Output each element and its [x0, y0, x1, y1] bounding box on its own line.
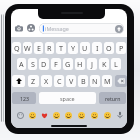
button[interactable]: Send: [115, 25, 123, 33]
button[interactable]: D: [39, 58, 49, 70]
button[interactable]: X: [41, 75, 52, 87]
button[interactable]: N: [90, 75, 100, 87]
staticText: Z: [31, 76, 36, 86]
staticText: 123: [20, 95, 29, 102]
staticText: O: [106, 43, 112, 53]
staticText: F: [54, 59, 58, 69]
button[interactable]: Emoji: [26, 108, 38, 122]
button[interactable]: Y: [68, 42, 78, 54]
other: Shift: [16, 78, 22, 84]
button[interactable]: Emoji: [101, 108, 114, 122]
button[interactable]: H: [75, 58, 85, 70]
staticText: R: [47, 43, 52, 53]
button[interactable]: L: [111, 58, 121, 70]
staticText: iMessage: [45, 25, 69, 32]
button[interactable]: iMessage: [39, 23, 124, 34]
button[interactable]: Camera: [15, 25, 23, 32]
button[interactable]: Emoji: [75, 108, 88, 122]
button[interactable]: Z: [28, 75, 39, 87]
button[interactable]: A: [17, 58, 26, 70]
staticText: S: [31, 59, 35, 69]
other: Backspace: [117, 77, 125, 85]
staticText: N: [92, 76, 98, 86]
staticText: T: [59, 43, 63, 53]
button[interactable]: O: [104, 42, 114, 54]
staticText: V: [69, 76, 74, 86]
button[interactable]: space: [39, 92, 96, 104]
button[interactable]: U: [80, 42, 90, 54]
staticText: Y: [71, 43, 76, 53]
staticText: U: [82, 43, 88, 53]
staticText: J: [91, 59, 93, 69]
button[interactable]: 123: [12, 92, 36, 104]
staticText: X: [44, 76, 49, 86]
button[interactable]: Apps: [27, 24, 35, 32]
staticText: I: [96, 43, 99, 53]
button[interactable]: T: [56, 42, 66, 54]
button[interactable]: Emoji: [14, 108, 26, 122]
staticText: M: [104, 76, 111, 86]
button[interactable]: Emoji: [50, 108, 62, 122]
button[interactable]: Dictation: [114, 108, 125, 122]
button[interactable]: R: [45, 42, 54, 54]
button[interactable]: I: [92, 42, 102, 54]
button[interactable]: S: [28, 58, 37, 70]
button[interactable]: Emoji: [38, 108, 50, 122]
staticText: H: [77, 59, 83, 69]
button[interactable]: C: [54, 75, 64, 87]
staticText: W: [24, 43, 31, 53]
button[interactable]: F: [51, 58, 61, 70]
button[interactable]: Emoji: [88, 108, 101, 122]
staticText: P: [119, 43, 124, 53]
button[interactable]: E: [34, 42, 43, 54]
button[interactable]: return: [99, 92, 126, 104]
button[interactable]: W: [23, 42, 32, 54]
button[interactable]: Backspace: [115, 75, 127, 87]
staticText: G: [65, 59, 71, 69]
staticText: D: [41, 59, 47, 69]
staticText: C: [57, 76, 62, 86]
button[interactable]: M: [102, 75, 112, 87]
button[interactable]: G: [63, 58, 73, 70]
staticText: A: [19, 59, 24, 69]
staticText: return: [105, 95, 121, 102]
staticText: space: [60, 95, 75, 102]
button[interactable]: B: [78, 75, 88, 87]
staticText: B: [81, 76, 86, 86]
button[interactable]: J: [87, 58, 97, 70]
button[interactable]: Shift: [12, 75, 25, 87]
button[interactable]: Emoji: [62, 108, 75, 122]
staticText: K: [102, 59, 107, 69]
button[interactable]: V: [66, 75, 76, 87]
button[interactable]: Q: [12, 42, 21, 54]
button[interactable]: P: [116, 42, 126, 54]
staticText: L: [114, 59, 118, 69]
button[interactable]: K: [99, 58, 109, 70]
staticText: Q: [14, 43, 20, 53]
staticText: E: [37, 43, 41, 53]
